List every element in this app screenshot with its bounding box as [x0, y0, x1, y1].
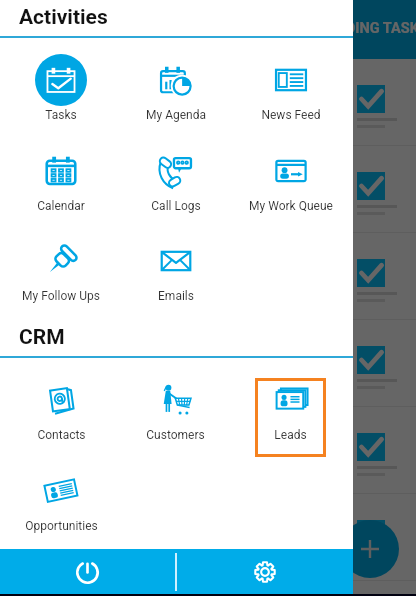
staticText: Emails [158, 289, 194, 303]
staticText: PENDING TASKS [318, 20, 416, 37]
staticText: Customers [146, 428, 205, 442]
button[interactable]: News Feed [233, 38, 348, 129]
button[interactable]: Settings [177, 549, 353, 595]
button[interactable]: Contacts [4, 358, 118, 449]
button[interactable]: Tasks [4, 38, 118, 129]
staticText: Call Logs [151, 199, 201, 213]
button[interactable]: Leads [233, 358, 348, 449]
staticText: CRM [19, 325, 65, 350]
staticText: Calendar [37, 199, 85, 213]
button[interactable]: Opportunities [4, 449, 118, 540]
button[interactable]: Emails [118, 219, 233, 310]
staticText: Tasks [45, 108, 77, 122]
staticText: My Agenda [146, 108, 206, 122]
staticText: My Follow Ups [22, 289, 100, 303]
button[interactable]: My Agenda [118, 38, 233, 129]
staticText: Activities [19, 5, 108, 30]
staticText: Opportunities [25, 519, 98, 533]
staticText: Leads [274, 428, 307, 442]
button[interactable]: Call Logs [118, 129, 233, 220]
button[interactable]: My Follow Ups [4, 219, 118, 310]
button[interactable]: My Work Queue [233, 129, 348, 220]
staticText: News Feed [261, 108, 321, 122]
staticText: Contacts [37, 428, 86, 442]
button[interactable]: Calendar [4, 129, 118, 220]
staticText: My Work Queue [249, 199, 333, 213]
other: Menu [282, 18, 306, 42]
button[interactable]: Logout [0, 549, 175, 595]
button[interactable]: Customers [118, 358, 233, 449]
button[interactable]: Add [341, 520, 399, 578]
